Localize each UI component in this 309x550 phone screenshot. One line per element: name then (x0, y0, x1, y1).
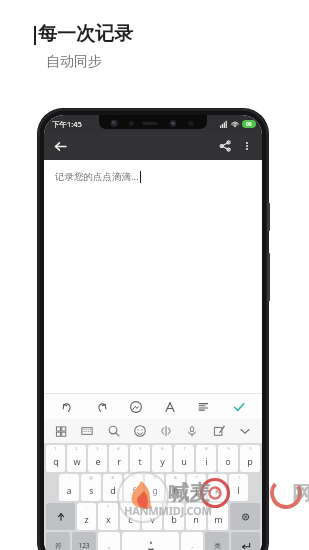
button[interactable]: Insert image (125, 396, 147, 418)
button[interactable]: ' (164, 503, 184, 530)
staticText: r (117, 455, 121, 467)
staticText: HANMMIDJ.COM (124, 503, 212, 518)
button[interactable]: & (166, 474, 185, 501)
staticText: , (108, 541, 110, 550)
staticText: o (225, 455, 231, 467)
button[interactable]: Emoji (129, 420, 151, 442)
button[interactable]: Share (214, 135, 236, 157)
button[interactable]: Text style (159, 396, 181, 418)
button[interactable]: 5 (130, 445, 150, 472)
button[interactable]: Space (122, 532, 179, 550)
button[interactable]: ; (120, 503, 140, 530)
staticText: % (153, 475, 157, 480)
staticText: ) (238, 475, 240, 480)
button[interactable]: , (98, 532, 120, 550)
staticText: l (237, 484, 240, 496)
button[interactable]: 8 (196, 445, 216, 472)
staticText: # (111, 475, 114, 480)
staticText: m (214, 513, 223, 525)
staticText: 0 (249, 446, 252, 451)
staticText: ? (107, 504, 109, 509)
button[interactable]: ( (208, 474, 227, 501)
staticText: ! (133, 475, 135, 480)
button[interactable]: Done (228, 396, 250, 418)
staticText: ~ (68, 475, 71, 480)
button[interactable]: @ (81, 474, 101, 501)
button[interactable]: 1 (46, 445, 65, 472)
button[interactable]: Voice input (181, 420, 203, 442)
button[interactable]: / (208, 503, 228, 530)
button[interactable]: Shift (46, 503, 75, 530)
button[interactable]: ) (229, 474, 248, 501)
button[interactable]: Back (49, 135, 71, 157)
button[interactable]: Hide keyboard (234, 420, 256, 442)
staticText: w (73, 455, 81, 467)
button[interactable]: Enter (231, 532, 260, 550)
staticText: / (217, 504, 219, 509)
staticText: 8 (205, 446, 208, 451)
button[interactable]: 2 (67, 445, 86, 472)
staticText: i (205, 455, 208, 467)
button[interactable]: Backspace (230, 503, 260, 530)
button[interactable]: 123 (72, 532, 96, 550)
staticText: k (215, 484, 220, 496)
staticText: 喊麦 (168, 480, 210, 506)
staticText: 网 (292, 482, 309, 506)
button[interactable]: 9 (218, 445, 238, 472)
staticText: b (171, 513, 177, 525)
button[interactable]: 6 (152, 445, 172, 472)
staticText: 4 (117, 446, 120, 451)
staticText: a (66, 484, 72, 496)
button[interactable]: Undo (56, 396, 78, 418)
staticText: 3 (96, 446, 99, 451)
staticText: 类 (214, 542, 221, 550)
staticText: : (151, 504, 153, 509)
staticText: 98 (246, 121, 252, 128)
staticText: d (110, 484, 116, 496)
button[interactable]: 0 (240, 445, 260, 472)
button[interactable]: Handwriting (208, 420, 230, 442)
button[interactable]: . (181, 532, 203, 550)
button[interactable]: 3 (88, 445, 107, 472)
staticText: & (174, 475, 177, 480)
staticText: 6 (161, 446, 164, 451)
button[interactable]: 4 (109, 445, 128, 472)
button[interactable]: # (103, 474, 122, 501)
button[interactable]: ~ (59, 474, 79, 501)
staticText: v (150, 513, 155, 525)
button[interactable]: Apps (50, 420, 72, 442)
button[interactable]: % (145, 474, 164, 501)
button[interactable]: Translate (155, 420, 177, 442)
staticText: j (195, 484, 198, 496)
staticText: * (195, 475, 198, 480)
staticText: ; (129, 504, 131, 509)
staticText: 2 (75, 446, 78, 451)
button[interactable]: 类 (205, 532, 229, 550)
staticText: 自动同步 (46, 53, 102, 71)
button[interactable]: List (193, 396, 215, 418)
staticText: g (152, 484, 158, 496)
staticText: ( (217, 475, 219, 480)
staticText: p (247, 455, 253, 467)
button[interactable]: 7 (174, 445, 194, 472)
staticText: 记录您的点点滴滴... (55, 170, 139, 183)
staticText: u (181, 455, 187, 467)
button[interactable]: - (77, 503, 96, 530)
staticText: . (191, 541, 193, 550)
button[interactable]: : (142, 503, 162, 530)
button[interactable]: Keyboard (76, 420, 98, 442)
staticText: s (89, 484, 94, 496)
button[interactable]: Search (103, 420, 125, 442)
button[interactable]: 符 (46, 532, 70, 550)
button[interactable]: ! (124, 474, 143, 501)
button[interactable]: ? (98, 503, 118, 530)
button[interactable]: * (187, 474, 206, 501)
staticText: q (53, 455, 59, 467)
button[interactable]: Redo (91, 396, 113, 418)
button[interactable]: " (186, 503, 206, 530)
staticText: 每一次记录 (38, 22, 133, 46)
staticText: z (84, 513, 89, 525)
staticText: f (132, 484, 136, 496)
staticText: 123 (78, 541, 90, 550)
button[interactable]: More options (236, 135, 258, 157)
